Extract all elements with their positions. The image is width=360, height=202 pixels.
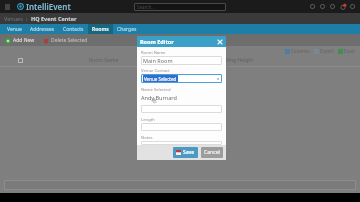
button[interactable]	[141, 123, 222, 131]
button[interactable]: Excel	[338, 48, 355, 54]
button[interactable]: IntelliEvent	[17, 1, 71, 12]
button[interactable]	[141, 141, 222, 145]
staticText: Addresses	[30, 26, 55, 33]
button[interactable]: Charges	[113, 24, 141, 34]
button[interactable]: Account	[349, 3, 356, 10]
staticText: Venue Selected	[144, 76, 177, 82]
staticText: Cancel	[204, 149, 220, 156]
staticText: Notes	[141, 135, 153, 141]
button[interactable]: Search...	[134, 3, 226, 11]
button[interactable]: Select all	[18, 58, 23, 63]
staticText: Excel	[344, 48, 355, 54]
staticText: Name Selected	[141, 87, 171, 93]
staticText: Andy Burnard	[141, 94, 177, 101]
button[interactable]: Messages	[329, 3, 336, 10]
staticText: Length	[141, 117, 155, 123]
staticText: Venue	[7, 26, 22, 33]
button[interactable]: Ceiling Height	[220, 57, 254, 64]
staticText: Rooms	[92, 26, 109, 33]
staticText: Contacts	[63, 26, 84, 33]
staticText: Export	[320, 48, 334, 54]
staticText: IntelliEvent	[26, 1, 71, 12]
staticText: Room Editor	[140, 38, 174, 45]
staticText: Delete Selected	[51, 37, 88, 44]
button[interactable]: Venue Contact	[157, 57, 192, 64]
button[interactable]: Help	[309, 3, 316, 10]
button[interactable]: Close	[216, 38, 224, 46]
staticText: Add New	[13, 37, 35, 44]
staticText: Main Room	[143, 57, 173, 64]
button[interactable]: Addresses	[26, 24, 59, 34]
button[interactable]: Add New	[5, 37, 35, 44]
button[interactable]	[141, 105, 222, 113]
button[interactable]: Export	[314, 48, 334, 54]
staticText: Search...	[137, 4, 155, 10]
staticText: ›	[23, 15, 31, 22]
staticText: Save	[183, 149, 195, 156]
button[interactable]: Contacts	[59, 24, 88, 34]
button[interactable]: Venues	[4, 15, 23, 22]
button[interactable]: Save	[173, 147, 198, 158]
button[interactable]: Tasks	[319, 3, 326, 10]
button[interactable]: Delete Selected	[43, 37, 88, 44]
button[interactable]: Venue Selected	[141, 74, 222, 83]
staticText: Room Name	[141, 50, 166, 56]
button[interactable]: Rooms	[88, 24, 113, 34]
staticText: HQ Event Center	[31, 15, 77, 22]
button[interactable]: Columns	[285, 48, 310, 54]
button[interactable]: Venue	[3, 24, 26, 34]
button[interactable]: Cancel	[201, 147, 223, 158]
button[interactable]: Menu	[3, 3, 11, 11]
staticText: Charges	[117, 26, 137, 33]
staticText: Columns	[291, 48, 310, 54]
button[interactable]: Notifications	[339, 3, 346, 10]
button[interactable]: Main Room	[141, 56, 222, 65]
staticText: Venue Contact	[141, 68, 170, 74]
button[interactable]: Room Name	[89, 57, 119, 64]
